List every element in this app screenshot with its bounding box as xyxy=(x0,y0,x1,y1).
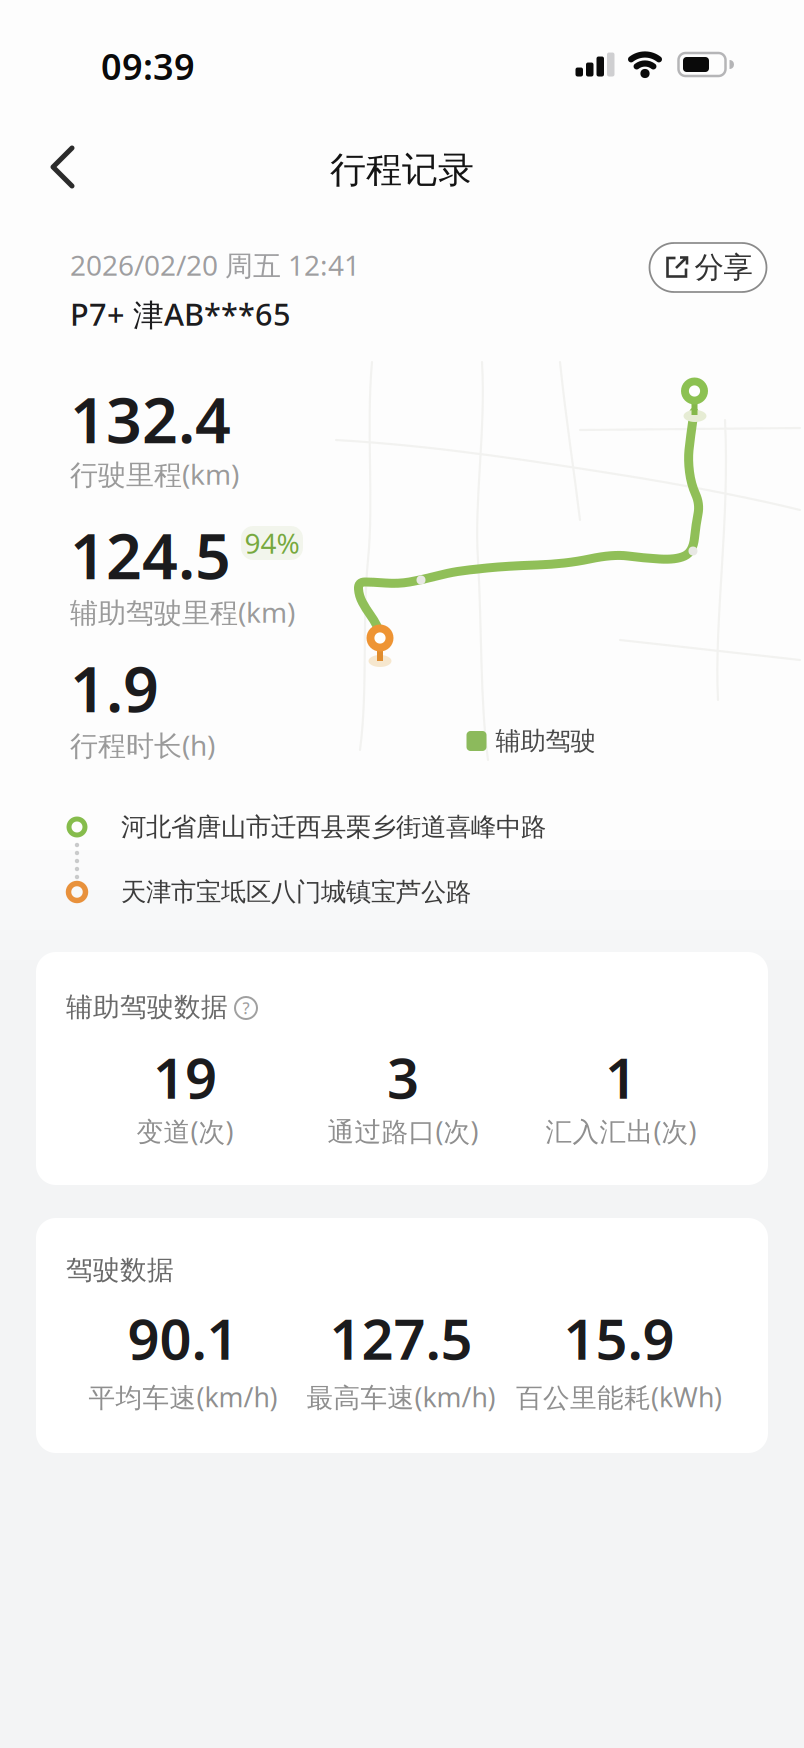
staticText: 15.9 xyxy=(563,1301,674,1375)
staticText: 变道(次) xyxy=(136,1113,233,1149)
staticText: 平均车速(km/h) xyxy=(88,1379,277,1415)
staticText: 驾驶数据 xyxy=(66,1254,174,1286)
staticText: 百公里能耗(kWh) xyxy=(516,1379,722,1415)
staticText: 辅助驾驶里程(km) xyxy=(70,593,295,631)
staticText: 行驶里程(km) xyxy=(70,455,239,493)
staticText: 辅助驾驶 xyxy=(495,725,595,756)
staticText: ? xyxy=(242,997,249,1019)
staticText: 19 xyxy=(153,1040,217,1114)
staticText: 127.5 xyxy=(329,1301,472,1375)
staticText: 天津市宝坻区八门城镇宝芦公路 xyxy=(121,876,471,907)
staticText: 124.5 xyxy=(70,513,231,597)
staticText: 汇入汇出(次) xyxy=(545,1113,696,1149)
staticText: P7+ 津AB***65 xyxy=(70,294,291,334)
staticText: 09:39 xyxy=(101,42,195,90)
button[interactable]: 分享 xyxy=(649,243,766,292)
staticText: 132.4 xyxy=(70,377,231,461)
button[interactable]: 辅助驾驶数据说明 xyxy=(232,994,260,1022)
staticText: 行程时长(h) xyxy=(70,726,215,764)
staticText: 最高车速(km/h) xyxy=(306,1379,495,1415)
staticText: 河北省唐山市迁西县栗乡街道喜峰中路 xyxy=(121,811,546,842)
staticText: 1 xyxy=(605,1040,637,1114)
staticText: 1.9 xyxy=(70,646,159,730)
button[interactable]: 返回 xyxy=(32,137,92,197)
staticText: 行程记录 xyxy=(330,148,474,192)
staticText: 辅助驾驶数据 xyxy=(66,991,228,1023)
staticText: 94% xyxy=(244,524,299,562)
staticText: 90.1 xyxy=(127,1301,238,1375)
staticText: 3 xyxy=(387,1040,419,1114)
staticText: 2026/02/20 周五 12:41 xyxy=(70,246,360,284)
staticText: 分享 xyxy=(694,249,752,285)
staticText: 通过路口(次) xyxy=(327,1113,478,1149)
